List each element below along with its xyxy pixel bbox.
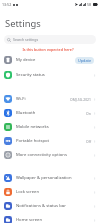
staticText: OMJ-5G-2021 (70, 97, 91, 102)
staticText: Portable hotspot (16, 138, 50, 144)
button[interactable]: Bluetooth (0, 106, 100, 120)
staticText: Is this button expected here? (0, 47, 96, 52)
staticText: Bluetooth (16, 110, 36, 116)
staticText: Lock screen (16, 189, 40, 195)
staticText: Off (86, 139, 91, 144)
staticText: 58 (87, 2, 92, 7)
staticText: Update (78, 58, 92, 63)
staticText: Search settings (13, 37, 39, 42)
staticText: 13:52 (2, 2, 12, 7)
staticText: On (86, 111, 91, 116)
button[interactable]: Home screen (0, 213, 100, 223)
button[interactable]: Portable hotspot (0, 134, 100, 148)
button[interactable]: Mobile networks (0, 120, 100, 134)
button[interactable]: My device (0, 53, 100, 67)
staticText: Wi-Fi (16, 96, 26, 102)
staticText: More connectivity options (16, 152, 67, 158)
button[interactable]: Search settings (4, 35, 96, 44)
staticText: Mobile networks (16, 124, 49, 130)
button[interactable]: Security status (0, 68, 100, 82)
button[interactable]: Notifications & status bar (0, 199, 100, 213)
button[interactable]: More connectivity options (0, 148, 100, 162)
staticText: Home screen (16, 217, 42, 223)
staticText: Wallpaper & personalization (16, 175, 72, 181)
staticText: Security status (16, 72, 45, 78)
staticText: My device (16, 57, 36, 63)
button[interactable]: Lock screen (0, 185, 100, 199)
button[interactable]: Wi-Fi (0, 92, 100, 106)
button[interactable]: Wallpaper & personalization (0, 171, 100, 185)
button[interactable]: Update (75, 57, 94, 64)
staticText: Settings (5, 17, 41, 30)
staticText: Notifications & status bar (16, 203, 66, 209)
